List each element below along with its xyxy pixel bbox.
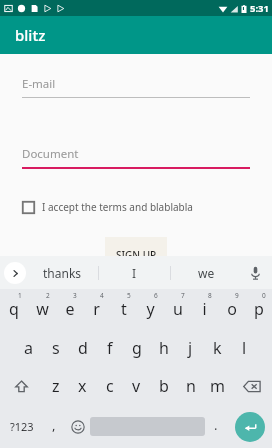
- staticText: 6: [154, 291, 158, 300]
- staticText: l: [242, 337, 247, 359]
- staticText: b: [159, 375, 169, 397]
- button[interactable]: y: [137, 289, 164, 329]
- button[interactable]: v: [123, 367, 150, 405]
- button[interactable]: g: [123, 329, 150, 367]
- button[interactable]: Enter: [235, 412, 265, 442]
- button[interactable]: s: [42, 329, 69, 367]
- button[interactable]: n: [177, 367, 204, 405]
- staticText: y: [146, 298, 155, 320]
- staticText: 0: [262, 291, 266, 300]
- button[interactable]: Voice input: [242, 256, 268, 289]
- button[interactable]: m: [204, 367, 231, 405]
- button[interactable]: w: [28, 289, 56, 329]
- button[interactable]: Emoji: [65, 405, 90, 448]
- staticText: u: [173, 298, 183, 320]
- button[interactable]: c: [96, 367, 123, 405]
- staticText: 7: [181, 291, 185, 300]
- staticText: .: [214, 416, 218, 434]
- button[interactable]: d: [69, 329, 96, 367]
- button[interactable]: Shift: [0, 367, 42, 405]
- button[interactable]: p: [245, 289, 272, 329]
- staticText: d: [78, 337, 88, 359]
- staticText: f: [107, 337, 113, 359]
- staticText: t: [121, 298, 127, 320]
- staticText: e: [65, 298, 75, 320]
- staticText: g: [132, 337, 142, 359]
- staticText: I accept the terms and blablabla: [42, 200, 193, 214]
- staticText: j: [188, 337, 193, 359]
- button[interactable]: e: [56, 289, 83, 329]
- staticText: x: [78, 375, 87, 397]
- staticText: 9: [235, 291, 239, 300]
- staticText: thanks: [43, 265, 82, 281]
- staticText: a: [24, 337, 33, 359]
- button[interactable]: o: [218, 289, 245, 329]
- button[interactable]: f: [96, 329, 123, 367]
- button[interactable]: .: [205, 405, 227, 448]
- button[interactable]: I accept the terms and blablabla: [22, 197, 193, 217]
- staticText: z: [52, 375, 60, 397]
- staticText: ?123: [10, 419, 34, 434]
- button[interactable]: t: [110, 289, 137, 329]
- button[interactable]: k: [204, 329, 231, 367]
- staticText: s: [52, 337, 60, 359]
- staticText: k: [213, 337, 222, 359]
- staticText: blitz: [15, 25, 46, 45]
- button[interactable]: Backspace: [231, 367, 272, 405]
- staticText: w: [36, 298, 49, 320]
- staticText: o: [227, 298, 237, 320]
- button[interactable]: l: [231, 329, 258, 367]
- button[interactable]: u: [164, 289, 191, 329]
- button[interactable]: E-mail: [22, 76, 250, 98]
- staticText: v: [132, 375, 141, 397]
- button[interactable]: Document: [22, 146, 250, 169]
- staticText: 8: [208, 291, 212, 300]
- button[interactable]: thanks: [26, 256, 98, 289]
- button[interactable]: b: [150, 367, 177, 405]
- button[interactable]: h: [150, 329, 177, 367]
- staticText: m: [210, 375, 225, 397]
- button[interactable]: SIGN UP: [105, 237, 167, 256]
- button[interactable]: x: [69, 367, 96, 405]
- button[interactable]: More suggestions: [4, 262, 26, 284]
- staticText: we: [198, 265, 215, 281]
- button[interactable]: I: [99, 256, 170, 289]
- staticText: q: [9, 298, 19, 320]
- staticText: h: [159, 337, 169, 359]
- staticText: 5:31: [250, 2, 269, 15]
- staticText: SIGN UP: [116, 248, 157, 256]
- staticText: 5: [127, 291, 131, 300]
- button[interactable]: i: [191, 289, 218, 329]
- staticText: c: [106, 375, 114, 397]
- staticText: n: [186, 375, 196, 397]
- button[interactable]: j: [177, 329, 204, 367]
- staticText: p: [254, 298, 264, 320]
- button[interactable]: r: [83, 289, 110, 329]
- staticText: 3: [73, 291, 77, 300]
- button[interactable]: we: [171, 256, 242, 289]
- staticText: 2: [46, 291, 50, 300]
- staticText: 4: [100, 291, 104, 300]
- button[interactable]: ?123: [0, 405, 43, 448]
- staticText: Document: [22, 146, 79, 162]
- staticText: r: [93, 298, 100, 320]
- staticText: 1: [18, 291, 22, 300]
- button[interactable]: q: [0, 289, 28, 329]
- button[interactable]: a: [15, 329, 42, 367]
- staticText: I: [132, 265, 137, 281]
- button[interactable]: z: [42, 367, 69, 405]
- staticText: i: [202, 298, 207, 320]
- button[interactable]: ,: [43, 405, 65, 448]
- staticText: ,: [52, 416, 56, 434]
- staticText: E-mail: [22, 76, 56, 92]
